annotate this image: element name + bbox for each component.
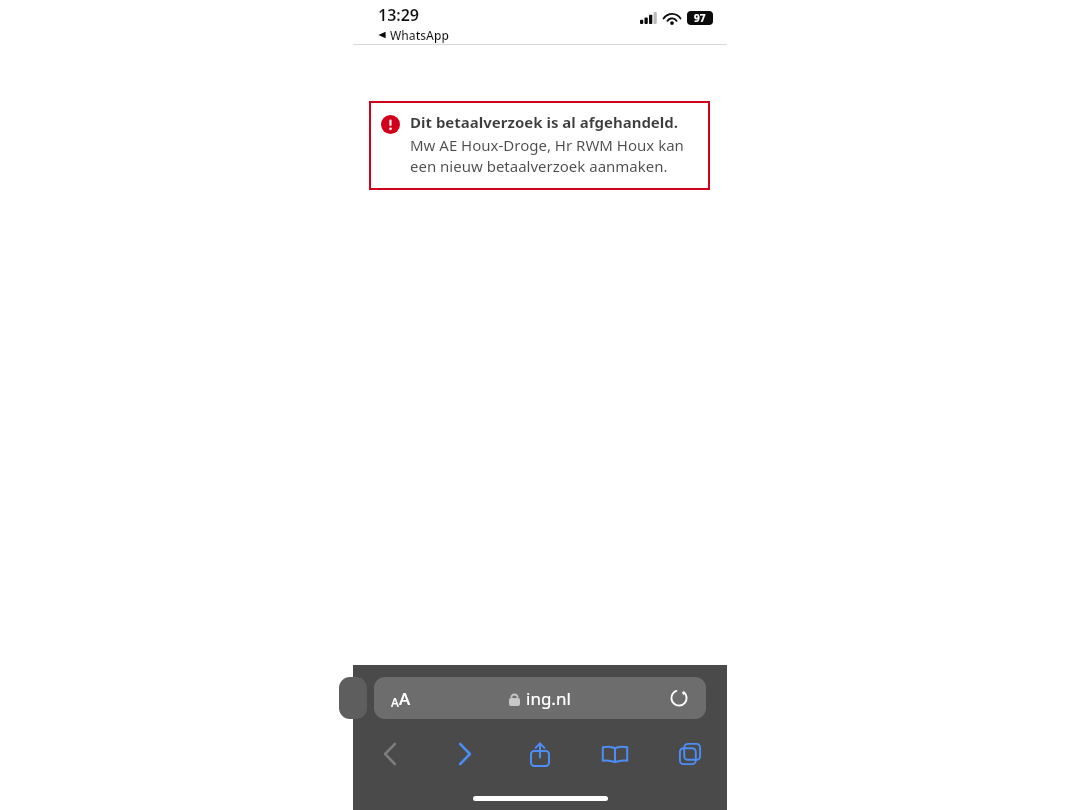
staticText: Mw AE Houx-Droge, Hr RWM Houx kan een ni… xyxy=(410,135,698,177)
button[interactable]: Forward xyxy=(427,731,502,777)
button[interactable]: Text size xyxy=(374,677,706,719)
staticText: A xyxy=(391,694,399,710)
staticText: Dit betaalverzoek is al afgehandeld. xyxy=(410,112,678,132)
button[interactable]: Bookmarks xyxy=(577,731,652,777)
staticText: 97 xyxy=(694,11,706,25)
button[interactable]: Previous tab xyxy=(339,677,367,719)
staticText: WhatsApp xyxy=(390,27,449,43)
button[interactable]: Back xyxy=(353,731,427,777)
button[interactable]: Dit betaalverzoek is al afgehandeld. xyxy=(369,101,710,190)
button[interactable]: Share xyxy=(502,731,577,777)
button[interactable]: Text size xyxy=(374,677,428,719)
button[interactable]: Tabs xyxy=(652,731,727,777)
staticText: 13:29 xyxy=(378,4,420,26)
staticText: A xyxy=(399,687,411,710)
button[interactable]: Reload xyxy=(652,677,706,719)
staticText: ing.nl xyxy=(526,687,571,710)
